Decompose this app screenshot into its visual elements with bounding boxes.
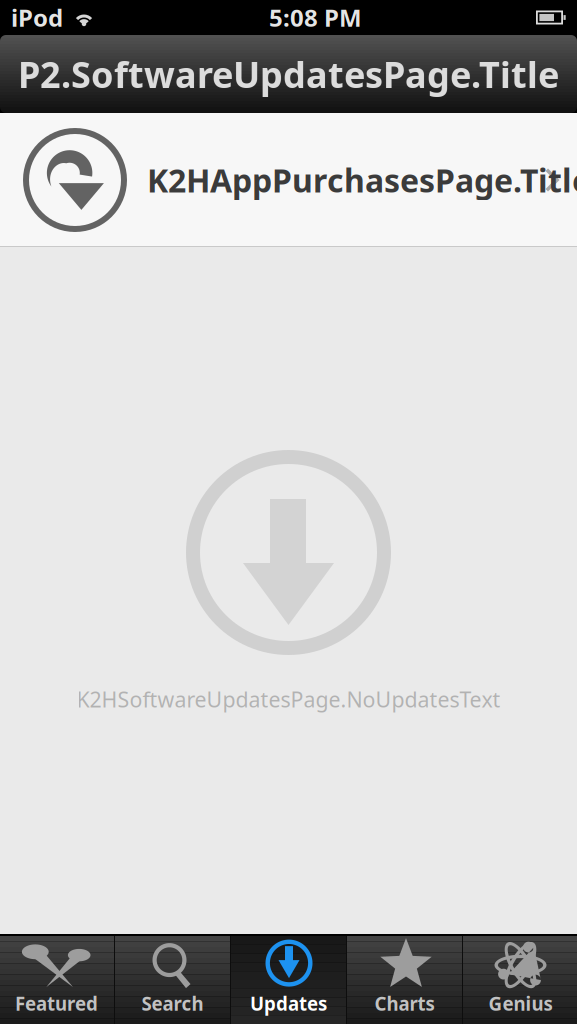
staticText: 5:08 PM xyxy=(269,2,362,33)
staticText: K2HSoftwareUpdatesPage.NoUpdatesText xyxy=(76,685,500,713)
staticText: Featured xyxy=(15,991,98,1016)
staticText: Charts xyxy=(374,991,434,1016)
staticText: K2HAppPurchasesPage.Title xyxy=(147,159,577,201)
staticText: Updates xyxy=(250,991,327,1016)
button[interactable]: Updates xyxy=(231,936,346,1024)
staticText: iPod xyxy=(11,2,63,33)
staticText: Search xyxy=(141,991,203,1016)
staticText: P2.SoftwareUpdatesPage.Title xyxy=(18,50,559,98)
button[interactable]: Charts xyxy=(347,936,462,1024)
button[interactable]: Genius xyxy=(463,936,577,1024)
staticText: Genius xyxy=(488,991,552,1016)
button[interactable]: Featured xyxy=(0,936,114,1024)
button[interactable]: K2HAppPurchasesPage.Title xyxy=(0,113,577,247)
button[interactable]: Search xyxy=(115,936,230,1024)
